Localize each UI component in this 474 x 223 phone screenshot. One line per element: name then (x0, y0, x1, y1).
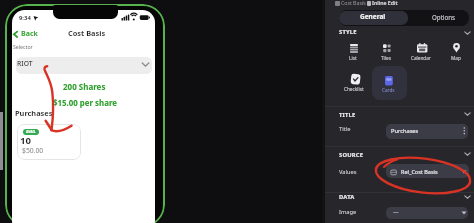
staticText: Calendar (411, 55, 431, 61)
button[interactable] (372, 66, 407, 100)
button[interactable] (17, 124, 81, 160)
staticText: Inline Edit (372, 0, 398, 6)
staticText: General (360, 12, 386, 21)
staticText: Back (21, 28, 38, 38)
button[interactable] (16, 57, 152, 74)
staticText: 10 (20, 134, 31, 147)
staticText: $15.00 per share (53, 98, 118, 109)
staticText: Cards (382, 87, 395, 93)
staticText: Cost Basis (341, 0, 366, 6)
staticText: $50.00 (22, 146, 44, 155)
button[interactable] (12, 28, 42, 40)
staticText: Selector (13, 43, 33, 50)
staticText: Tiles (381, 55, 391, 61)
staticText: Checklist (344, 86, 364, 92)
button[interactable] (446, 40, 466, 62)
staticText: Map (451, 55, 461, 61)
staticText: — (393, 208, 399, 215)
staticText: / (362, 0, 364, 6)
staticText: Purchases (15, 108, 53, 118)
button[interactable] (345, 68, 366, 92)
button[interactable] (339, 11, 408, 25)
staticText: 9:34 (19, 14, 31, 22)
button[interactable] (386, 164, 469, 178)
staticText: Image (339, 208, 357, 216)
staticText: AVAIL (26, 129, 36, 133)
staticText: List (349, 55, 357, 61)
button[interactable] (377, 40, 397, 62)
button[interactable] (386, 124, 468, 139)
staticText: SOURCE (339, 151, 364, 159)
staticText: RIOT (17, 59, 33, 68)
staticText: 200 Shares (63, 81, 106, 92)
staticText: Title (339, 125, 351, 133)
staticText: Cost Basis (68, 28, 106, 38)
staticText: Purchases (391, 127, 419, 135)
button[interactable] (412, 40, 432, 62)
staticText: Values (339, 168, 357, 176)
button[interactable] (386, 207, 468, 219)
staticText: Options (432, 13, 455, 21)
button[interactable] (344, 40, 364, 62)
staticText: TITLE (339, 111, 356, 119)
staticText: DATA (339, 193, 355, 201)
staticText: Rel_Cost Basis (401, 168, 438, 175)
button[interactable] (408, 11, 467, 25)
staticText: STYLE (339, 28, 357, 36)
